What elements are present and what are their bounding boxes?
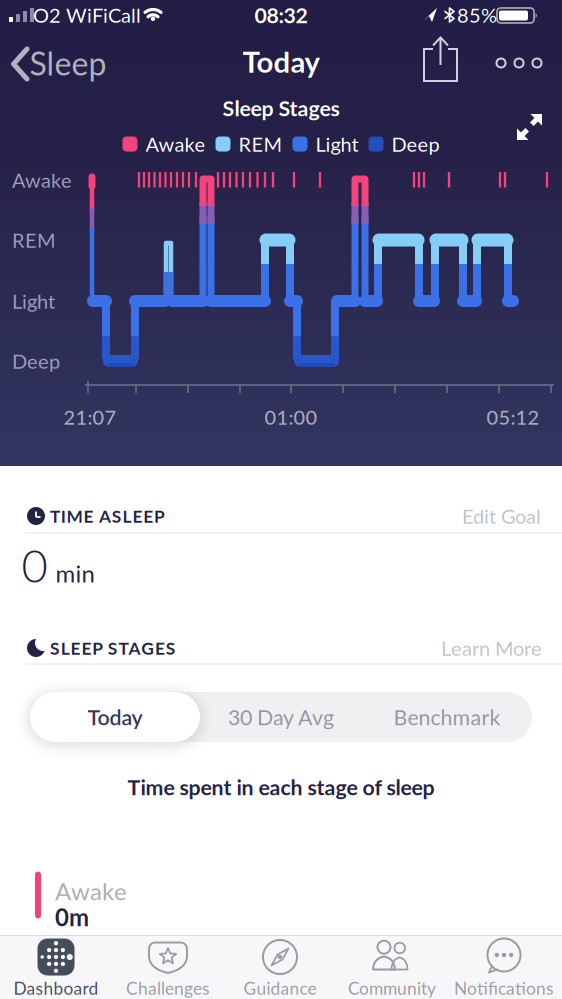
staticText: min (55, 559, 94, 587)
button[interactable]: Guidance (225, 935, 335, 999)
button[interactable]: Dashboard (1, 935, 111, 999)
staticText: Time spent in each stage of sleep (127, 774, 434, 799)
button[interactable] (508, 108, 552, 152)
staticText: Challenges (126, 978, 210, 998)
staticText: Light (12, 289, 55, 313)
staticText: TIME ASLEEP (50, 506, 165, 526)
staticText: 05:12 (486, 405, 539, 429)
staticText: 01:00 (264, 405, 317, 429)
button[interactable]: Edit Goal (431, 499, 541, 533)
staticText: 30 Day Avg (228, 704, 334, 729)
staticText: Guidance (243, 978, 316, 998)
staticText: Community (348, 978, 436, 998)
button[interactable]: Community (337, 935, 447, 999)
staticText: Benchmark (393, 704, 500, 729)
staticText: Dashboard (13, 978, 98, 998)
button[interactable] (489, 43, 549, 83)
staticText: Awake (12, 168, 72, 192)
button[interactable]: Sleep (0, 39, 110, 89)
staticText: 21:07 (63, 405, 116, 429)
button[interactable]: Notifications (449, 935, 559, 999)
staticText: Light (315, 132, 358, 156)
staticText: Deep (391, 132, 439, 156)
staticText: Notifications (454, 978, 554, 998)
button[interactable] (417, 36, 463, 84)
staticText: Learn More (441, 636, 542, 660)
staticText: REM (238, 132, 282, 156)
staticText: Deep (12, 349, 60, 373)
button[interactable]: Challenges (113, 935, 223, 999)
staticText: Awake (145, 132, 205, 156)
button[interactable]: 30 Day Avg (198, 692, 364, 742)
button[interactable]: Learn More (382, 631, 542, 665)
staticText: 0 (21, 538, 47, 591)
staticText: Today (87, 704, 142, 729)
staticText: Sleep (29, 44, 106, 82)
staticText: Edit Goal (462, 504, 541, 528)
staticText: Sleep Stages (222, 95, 339, 120)
staticText: O2 WiFiCall (33, 3, 141, 27)
staticText: SLEEP STAGES (50, 638, 176, 658)
staticText: 0m (55, 903, 89, 931)
staticText: 08:32 (254, 2, 307, 27)
staticText: Awake (55, 877, 127, 905)
staticText: REM (12, 228, 56, 252)
button[interactable]: Benchmark (364, 692, 530, 742)
staticText: Today (242, 44, 319, 79)
staticText: 85% (457, 3, 497, 27)
button[interactable]: Today (30, 692, 200, 742)
